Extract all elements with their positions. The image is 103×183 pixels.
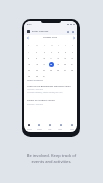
- staticText: T: [58, 44, 60, 47]
- staticText: Home: [27, 128, 32, 130]
- staticText: 27: [64, 69, 67, 72]
- staticText: 23: [36, 69, 39, 72]
- staticText: 15: [28, 63, 31, 66]
- button[interactable]: News: [55, 123, 66, 131]
- staticText: 3: [44, 51, 46, 54]
- staticText: Event Calendar: [32, 30, 49, 33]
- staticText: 11: [50, 57, 53, 60]
- button[interactable]: Menu: [27, 30, 30, 33]
- staticText: 7: [72, 51, 74, 54]
- staticText: F: [65, 44, 66, 47]
- button[interactable]: Filter: [72, 31, 74, 33]
- button[interactable]: Events: [34, 123, 44, 131]
- staticText: 30: [36, 75, 39, 78]
- staticText: Lunch & the Beginnings Welcome Mixer: [27, 85, 71, 88]
- staticText: 16: [36, 63, 39, 66]
- staticText: 9: [36, 57, 38, 60]
- staticText: 20: [64, 63, 67, 66]
- button[interactable]: 18: [49, 62, 54, 67]
- staticText: 13: [64, 57, 67, 60]
- staticText: 6: [65, 51, 67, 54]
- staticText: 1:00 pm - 2:30 pm: [27, 88, 43, 91]
- staticText: 4: [51, 51, 53, 54]
- button[interactable]: Home: [24, 123, 34, 131]
- staticText: S: [28, 44, 30, 47]
- staticText: M: [36, 44, 38, 47]
- staticText: Al Shaw Campus, Lorem Center, Rm 100: [27, 91, 63, 94]
- staticText: 17: [43, 63, 46, 66]
- staticText: 5: [58, 51, 60, 54]
- staticText: 10: [43, 57, 46, 60]
- staticText: 5:30 pm - 7:00 pm: [27, 103, 43, 106]
- button[interactable]: More: [66, 123, 77, 131]
- staticText: 12: [57, 57, 60, 60]
- staticText: TODAY'S EVENTS: [27, 79, 43, 82]
- staticText: News: [58, 128, 63, 130]
- staticText: 21: [71, 63, 74, 66]
- button[interactable]: Next month: [72, 36, 75, 39]
- staticText: S: [72, 44, 74, 47]
- staticText: 18: [50, 63, 53, 66]
- staticText: Map: [48, 128, 52, 130]
- staticText: 1: [28, 51, 30, 54]
- staticText: 28: [71, 69, 74, 72]
- staticText: 31: [43, 75, 46, 78]
- button[interactable]: Previous month: [26, 36, 29, 39]
- staticText: 8: [28, 57, 30, 60]
- staticText: 24: [43, 69, 46, 72]
- staticText: T: [44, 44, 46, 47]
- staticText: 26: [57, 69, 60, 72]
- staticText: Events: [37, 128, 42, 130]
- staticText: More: [70, 128, 74, 130]
- button[interactable]: Map: [44, 123, 55, 131]
- staticText: 9:41: [27, 23, 32, 26]
- staticText: 22: [28, 69, 31, 72]
- staticText: 29: [28, 75, 31, 78]
- staticText: 14: [71, 57, 74, 60]
- staticText: W: [51, 44, 53, 47]
- staticText: 2: [36, 51, 38, 54]
- staticText: 25: [50, 69, 53, 72]
- staticText: 19: [57, 63, 60, 66]
- staticText: Be involved. Keep track of events and ac…: [0, 153, 103, 164]
- staticText: Dinner by Student Center: [27, 99, 55, 102]
- staticText: October 2023: [43, 36, 58, 39]
- button[interactable]: Search: [67, 31, 69, 33]
